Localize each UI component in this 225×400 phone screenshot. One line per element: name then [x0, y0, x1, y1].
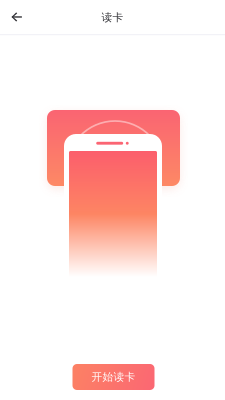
button[interactable]: 开始读卡: [71, 364, 153, 390]
staticText: 读卡: [101, 11, 123, 24]
button[interactable]: Back: [0, 0, 34, 34]
staticText: 开始读卡: [91, 370, 135, 383]
